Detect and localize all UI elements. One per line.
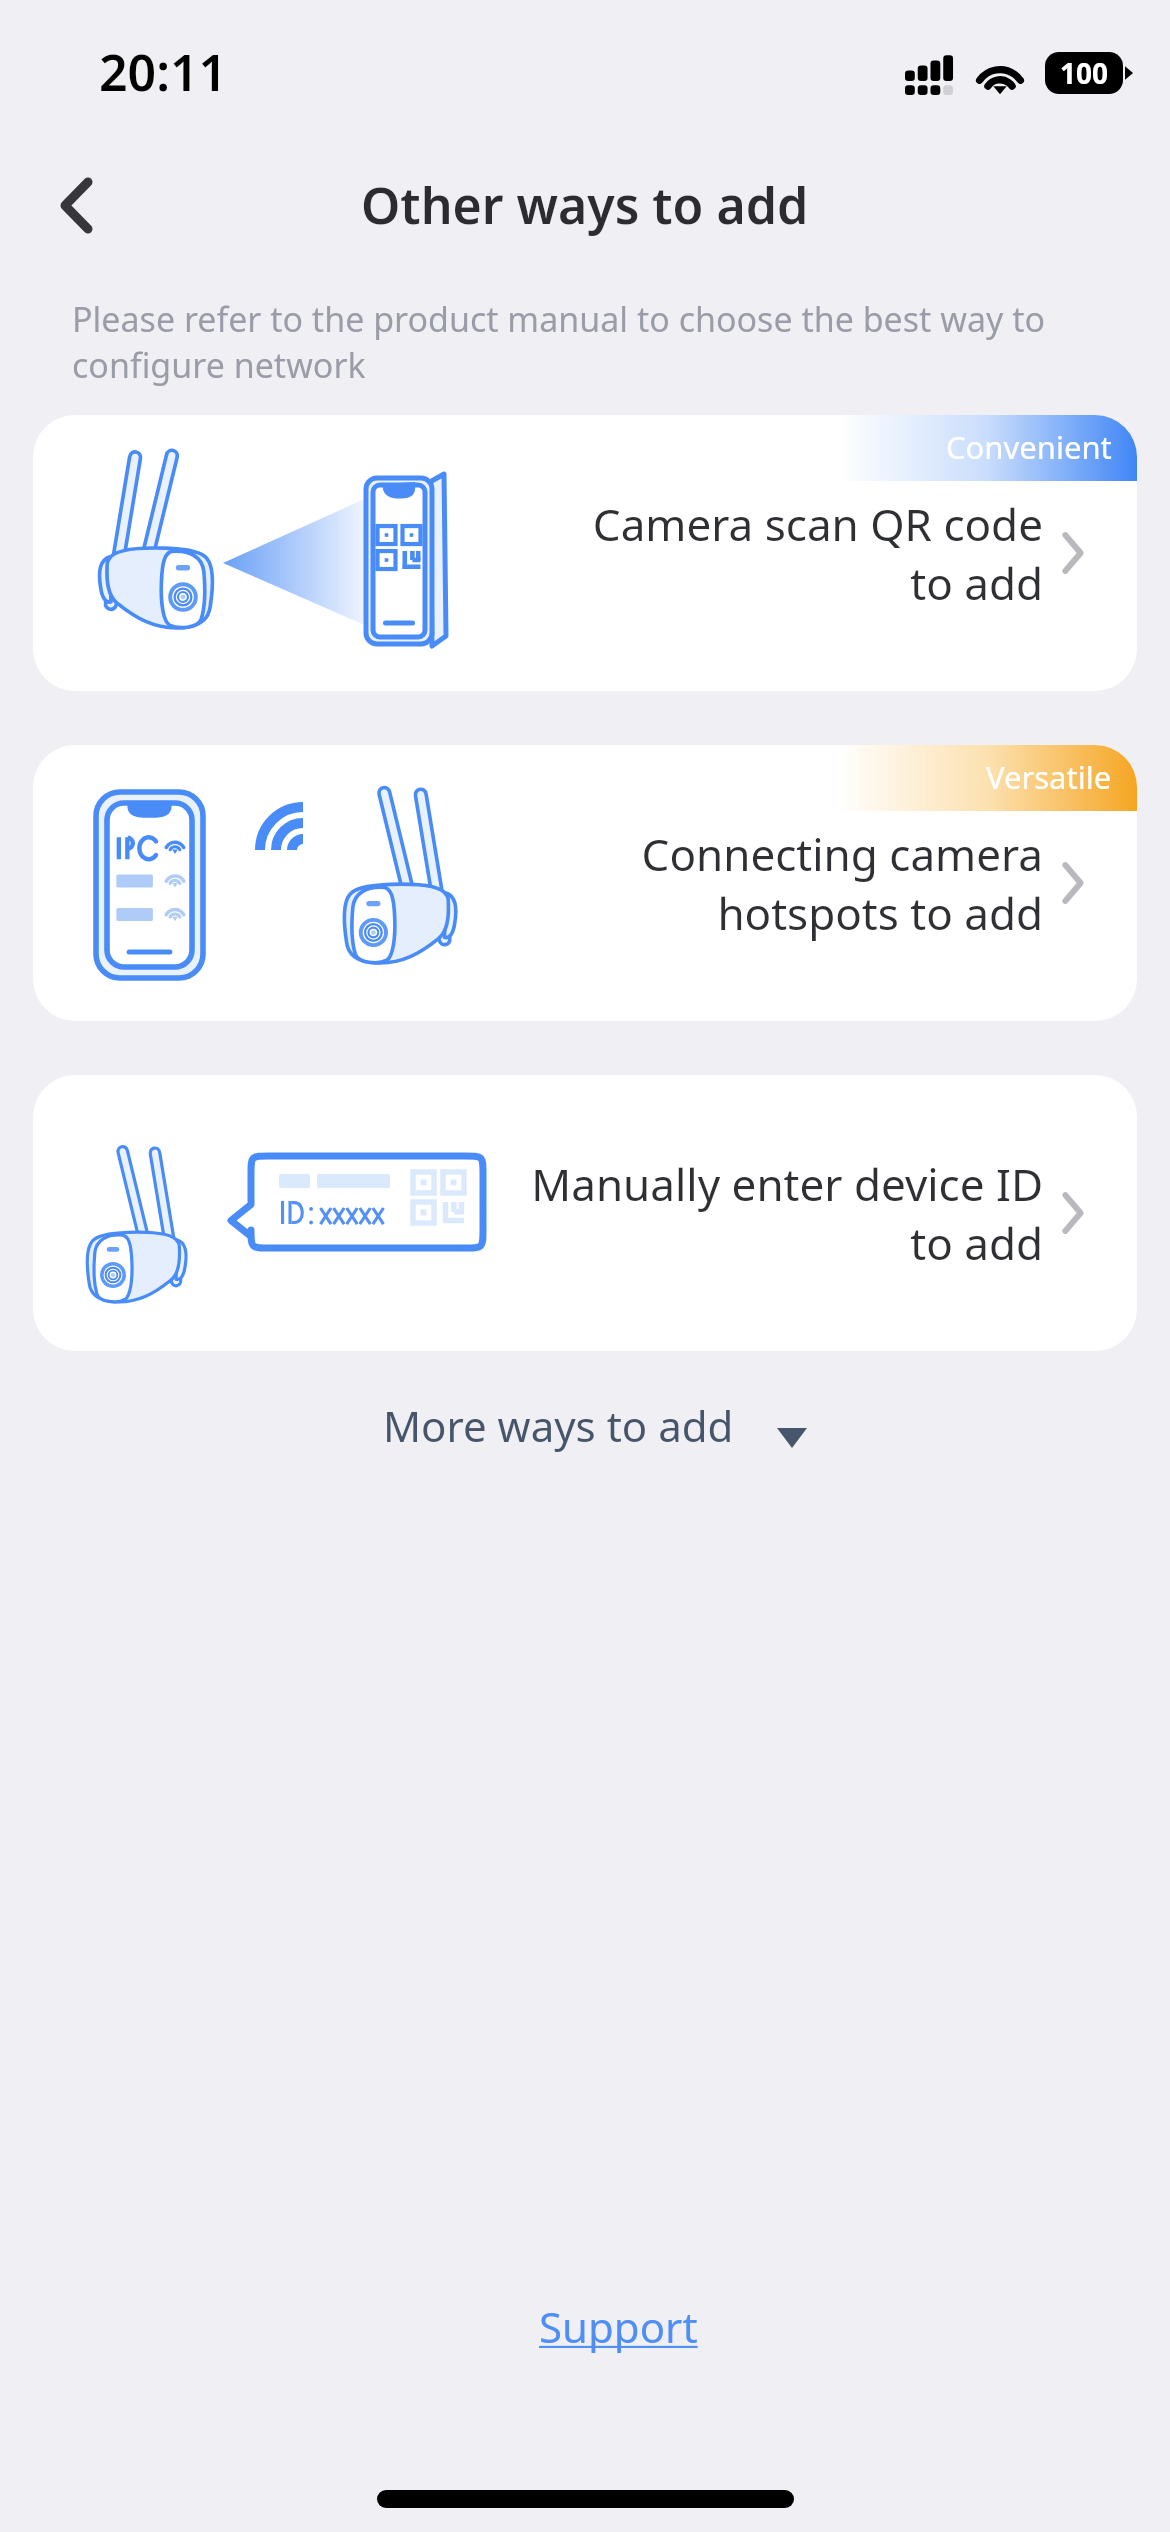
button[interactable]: Convenient — [33, 415, 1137, 691]
staticText: 20:11 — [99, 38, 228, 106]
button[interactable]: More ways to add — [0, 1394, 1170, 1456]
button[interactable]: Versatile — [33, 745, 1137, 1021]
button[interactable]: Support — [529, 2294, 708, 2359]
staticText: Versatile — [986, 756, 1112, 798]
staticText: Connecting camera hotspots to add — [503, 824, 1043, 942]
button[interactable]: Manually enter device ID to add — [33, 1075, 1137, 1351]
staticText: Please refer to the product manual to ch… — [72, 296, 1046, 388]
staticText: 100 — [1060, 54, 1109, 92]
staticText: Other ways to add — [361, 171, 809, 239]
staticText: Camera scan QR code to add — [503, 494, 1043, 612]
staticText: More ways to add — [383, 1397, 734, 1454]
button[interactable]: Back — [25, 154, 127, 256]
staticText: Manually enter device ID to add — [503, 1154, 1043, 1272]
staticText: Convenient — [946, 426, 1112, 468]
